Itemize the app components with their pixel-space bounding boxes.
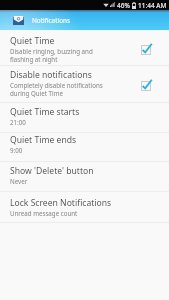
staticText: Show 'Delete' button bbox=[10, 165, 94, 177]
staticText: 9:00 bbox=[10, 146, 23, 154]
button[interactable]: Quiet Time starts bbox=[0, 103, 169, 133]
staticText: Lock Screen Notifications bbox=[10, 197, 112, 209]
staticText: Unread message count bbox=[10, 209, 78, 217]
staticText: flashing at night bbox=[10, 55, 58, 63]
staticText: Notifications bbox=[32, 16, 71, 25]
staticText: Disable notifications bbox=[10, 69, 92, 81]
button[interactable]: Quiet Time bbox=[0, 30, 169, 66]
staticText: 11:44 AM bbox=[138, 1, 167, 10]
staticText: during Quiet Time bbox=[10, 89, 63, 97]
staticText: 46% bbox=[117, 1, 130, 10]
button[interactable]: Show 'Delete' button bbox=[0, 162, 169, 192]
staticText: Quiet Time starts bbox=[10, 106, 80, 118]
staticText: Disable ringing, buzzing and bbox=[10, 47, 93, 55]
staticText: Completely disable notifications bbox=[10, 81, 103, 89]
button[interactable]: Lock Screen Notifications bbox=[0, 192, 169, 223]
other: Notifications bbox=[13, 16, 24, 25]
staticText: 21:00 bbox=[10, 118, 26, 126]
button[interactable]: Disable notifications bbox=[0, 66, 169, 103]
button[interactable]: Quiet Time ends bbox=[0, 133, 169, 162]
staticText: Quiet Time ends bbox=[10, 134, 77, 146]
staticText: Never bbox=[10, 177, 28, 185]
staticText: Quiet Time bbox=[10, 35, 55, 47]
